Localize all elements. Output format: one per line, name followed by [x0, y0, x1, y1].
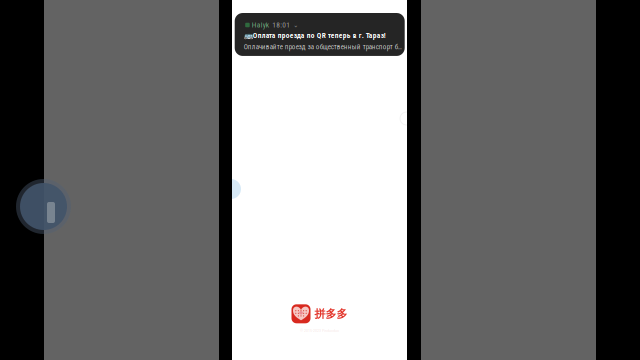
staticText: 拼多多 [314, 307, 347, 321]
staticText: Оплачивайте проезд за общественный транс… [244, 43, 403, 51]
staticText: © 2015-2023 Pinduoduo [300, 328, 339, 333]
staticText: ⌄ [293, 21, 298, 29]
staticText: 18:01 [272, 21, 290, 29]
staticText: 🚌Оплата проезда по QR теперь в г. Тараз! [244, 31, 386, 40]
button[interactable]: Halyk [235, 13, 405, 56]
staticText: Halyk [252, 21, 269, 29]
